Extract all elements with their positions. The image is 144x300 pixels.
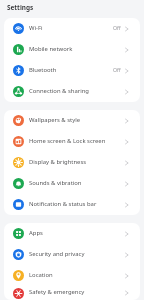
staticText: Connection & sharing — [29, 87, 124, 95]
button[interactable]: Security and privacy — [4, 244, 140, 265]
button[interactable]: Display & brightness — [4, 152, 140, 173]
staticText: Off — [113, 24, 121, 31]
staticText: Mobile network — [29, 45, 124, 53]
staticText: Notification & status bar — [29, 200, 124, 208]
button[interactable]: Location — [4, 265, 140, 286]
button[interactable]: Sounds & vibration — [4, 173, 140, 194]
button[interactable]: Home screen & Lock screen — [4, 131, 140, 152]
staticText: Safety & emergency — [29, 288, 124, 296]
button[interactable]: Apps — [4, 223, 140, 244]
staticText: Sounds & vibration — [29, 179, 124, 187]
staticText: Off — [113, 66, 121, 73]
button[interactable]: Connection & sharing — [4, 81, 140, 102]
button[interactable]: Notification & status bar — [4, 194, 140, 215]
staticText: Apps — [29, 229, 124, 237]
staticText: Location — [29, 271, 124, 279]
button[interactable]: Wallpapers & style — [4, 110, 140, 131]
staticText: Wallpapers & style — [29, 116, 124, 124]
button[interactable]: Mobile network — [4, 39, 140, 60]
staticText: Wi-Fi — [29, 24, 113, 32]
staticText: Settings — [7, 3, 34, 12]
staticText: Bluetooth — [29, 66, 113, 74]
staticText: Display & brightness — [29, 158, 124, 166]
button[interactable]: Safety & emergency — [4, 286, 140, 300]
staticText: Security and privacy — [29, 250, 124, 258]
staticText: Home screen & Lock screen — [29, 137, 124, 145]
button[interactable]: Bluetooth — [4, 60, 140, 81]
button[interactable]: Wi-Fi — [4, 18, 140, 39]
